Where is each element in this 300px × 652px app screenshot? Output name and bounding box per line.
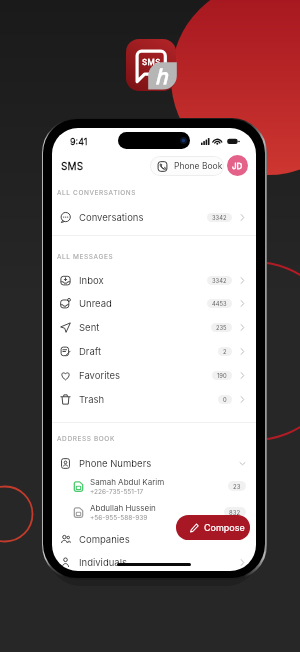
button[interactable]: Sent [52, 316, 256, 338]
staticText: Phone Numbers [79, 458, 152, 469]
staticText: Phone Book [174, 161, 223, 171]
staticText: Conversations [79, 212, 144, 223]
staticText: ALL CONVERSATIONS [57, 189, 137, 197]
button[interactable]: Conversations [52, 206, 256, 228]
staticText: SMS [61, 160, 84, 172]
staticText: 23 [233, 483, 241, 490]
button[interactable]: Trash [52, 388, 256, 410]
staticText: ALL MESSAGES [57, 253, 114, 261]
button[interactable]: Companies [52, 528, 256, 550]
button[interactable]: Individuals [52, 551, 256, 571]
button[interactable]: JD [227, 155, 248, 176]
button[interactable]: Unread [52, 292, 256, 314]
staticText: Individuals [79, 557, 128, 568]
staticText: JD [232, 161, 243, 171]
staticText: Unread [79, 298, 112, 309]
staticText: 4453 [212, 300, 227, 307]
button[interactable]: Phone Book [150, 156, 224, 176]
staticText: 235 [216, 324, 227, 331]
staticText: +56-955-588-939 [90, 514, 148, 522]
staticText: 3342 [212, 277, 227, 284]
button[interactable]: Favorites [52, 364, 256, 386]
staticText: +226-735-551-17 [90, 488, 144, 496]
staticText: h [155, 64, 168, 89]
staticText: SMS [142, 57, 161, 67]
staticText: Abdullah Hussein [90, 503, 156, 513]
button[interactable]: Draft [52, 340, 256, 362]
staticText: Draft [79, 346, 102, 357]
staticText: ADDRESS BOOK [57, 435, 115, 443]
staticText: 832 [229, 509, 241, 516]
staticText: 3342 [212, 214, 227, 221]
staticText: 190 [217, 372, 227, 379]
staticText: Inbox [79, 275, 104, 286]
staticText: Companies [79, 534, 130, 545]
staticText: 2 [223, 348, 227, 355]
staticText: Samah Abdul Karim [90, 477, 165, 487]
button[interactable]: Phone Numbers [52, 452, 256, 474]
button[interactable]: Abdullah Hussein [52, 501, 256, 523]
button[interactable]: Compose [176, 515, 250, 540]
staticText: 0 [223, 396, 227, 403]
button[interactable]: Samah Abdul Karim [52, 475, 256, 497]
staticText: Favorites [79, 370, 121, 381]
staticText: Sent [79, 322, 100, 333]
staticText: Compose [204, 522, 245, 533]
staticText: Trash [79, 394, 105, 405]
staticText: 9:41 [70, 136, 88, 147]
button[interactable]: Inbox [52, 269, 256, 291]
